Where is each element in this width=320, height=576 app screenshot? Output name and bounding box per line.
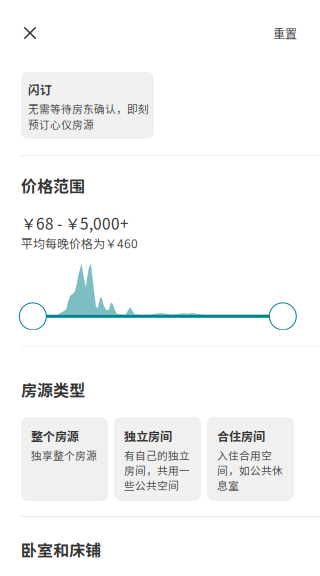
- staticText: 平均每晚价格为￥460: [21, 234, 138, 252]
- button[interactable]: 关闭: [13, 16, 47, 50]
- staticText: 价格范围: [21, 174, 85, 197]
- staticText: 独立房间: [124, 427, 172, 444]
- button[interactable]: 整个房源: [21, 417, 108, 501]
- staticText: 入住合用空间，如公共休息室: [217, 447, 283, 493]
- staticText: 有自己的独立房间，共用一些公共空间: [124, 447, 190, 493]
- staticText: 重置: [273, 24, 297, 42]
- staticText: 闪订: [28, 81, 52, 98]
- staticText: 房源类型: [21, 378, 85, 401]
- staticText: 独享整个房源: [31, 447, 97, 463]
- button[interactable]: 重置: [267, 15, 303, 51]
- staticText: 整个房源: [31, 427, 79, 444]
- button[interactable]: 合住房间: [207, 417, 294, 501]
- button[interactable]: 独立房间: [114, 417, 201, 501]
- staticText: 合住房间: [217, 427, 265, 444]
- staticText: 无需等待房东确认，即刻 预订心仪房源: [28, 101, 149, 132]
- staticText: 卧室和床铺: [21, 538, 101, 561]
- staticText: ￥68 - ￥5,000+: [21, 212, 129, 234]
